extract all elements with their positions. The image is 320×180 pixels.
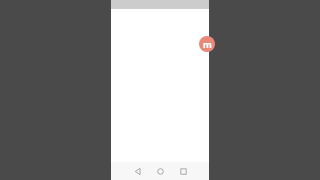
button[interactable]: Home (149, 162, 172, 180)
button[interactable]: Menu badge (199, 36, 215, 52)
staticText: m (203, 38, 212, 50)
button[interactable]: Back (126, 162, 149, 180)
button[interactable]: Recent apps (172, 162, 195, 180)
